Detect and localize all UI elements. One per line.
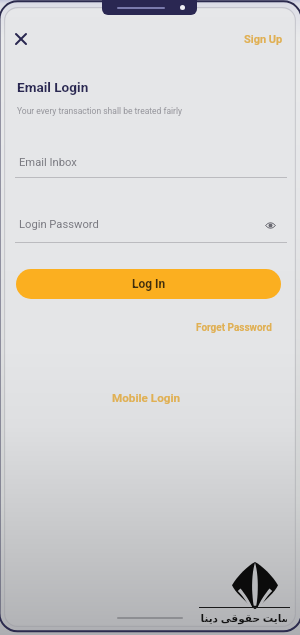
staticText: Your every transaction shall be treated …: [17, 106, 183, 116]
staticText: Email Inbox: [19, 156, 77, 169]
button[interactable]: Sign Up: [237, 28, 290, 51]
button[interactable]: Forget Password: [189, 317, 279, 339]
staticText: Sign Up: [244, 33, 283, 46]
staticText: Forget Password: [196, 322, 272, 334]
staticText: Email Login: [17, 79, 89, 95]
staticText: Login Password: [19, 218, 99, 231]
button[interactable]: Show password: [260, 215, 280, 235]
button[interactable]: Log In: [16, 269, 281, 299]
staticText: Log In: [132, 277, 166, 291]
staticText: سایت حقوقی دینا: [200, 611, 287, 625]
button[interactable]: Close: [10, 28, 32, 50]
button[interactable]: Mobile Login: [104, 386, 189, 410]
staticText: Mobile Login: [112, 391, 181, 405]
